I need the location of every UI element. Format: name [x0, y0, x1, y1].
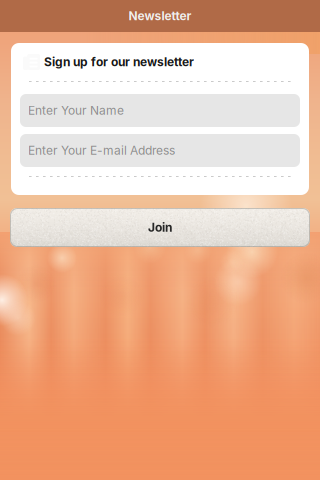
staticText: Enter Your E-mail Address — [28, 143, 175, 158]
button[interactable]: Join — [10, 208, 310, 247]
staticText: Newsletter — [128, 9, 191, 23]
staticText: Join — [148, 220, 172, 235]
staticText: Sign up for our newsletter — [44, 55, 194, 69]
staticText: Enter Your Name — [28, 103, 124, 118]
